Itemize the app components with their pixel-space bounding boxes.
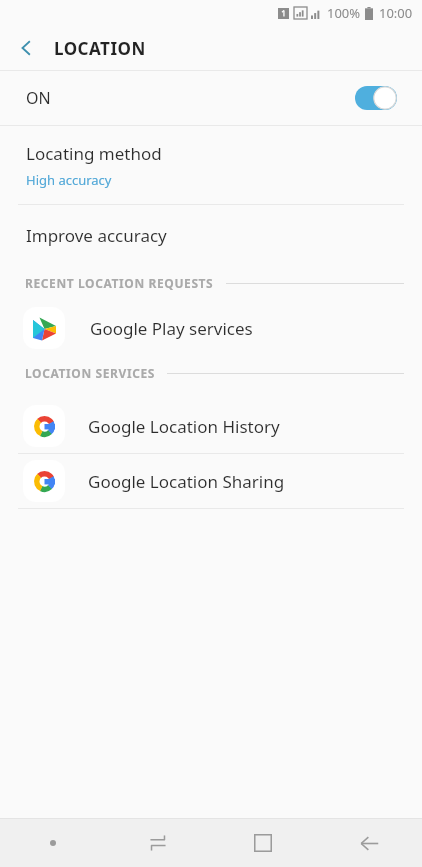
staticText: High accuracy [26, 171, 112, 189]
button[interactable]: Navigate up [8, 30, 44, 66]
staticText: RECENT LOCATION REQUESTS [25, 275, 214, 291]
button[interactable]: Google Play services [0, 301, 422, 355]
button[interactable]: Recent apps [105, 819, 210, 867]
button[interactable]: ON [0, 71, 422, 125]
staticText: 100% [327, 4, 361, 22]
button[interactable]: Keyboard indicator [0, 819, 105, 867]
staticText: Google Location Sharing [88, 470, 285, 493]
staticText: ON [26, 87, 51, 109]
button[interactable]: Improve accuracy [0, 205, 422, 265]
staticText: Improve accuracy [26, 224, 167, 247]
button[interactable]: Google Location Sharing [0, 454, 422, 508]
staticText: Google Play services [90, 317, 253, 340]
button[interactable]: Location switch, on [355, 86, 397, 110]
button[interactable]: Back [316, 819, 422, 867]
staticText: 10:00 [379, 4, 413, 22]
button[interactable]: Google Location History [0, 399, 422, 453]
staticText: Google Location History [88, 415, 280, 438]
button[interactable]: Locating method [0, 126, 422, 204]
staticText: Locating method [26, 142, 162, 165]
staticText: LOCATION SERVICES [25, 365, 155, 381]
button[interactable]: Home [210, 819, 316, 867]
staticText: LOCATION [54, 37, 146, 60]
